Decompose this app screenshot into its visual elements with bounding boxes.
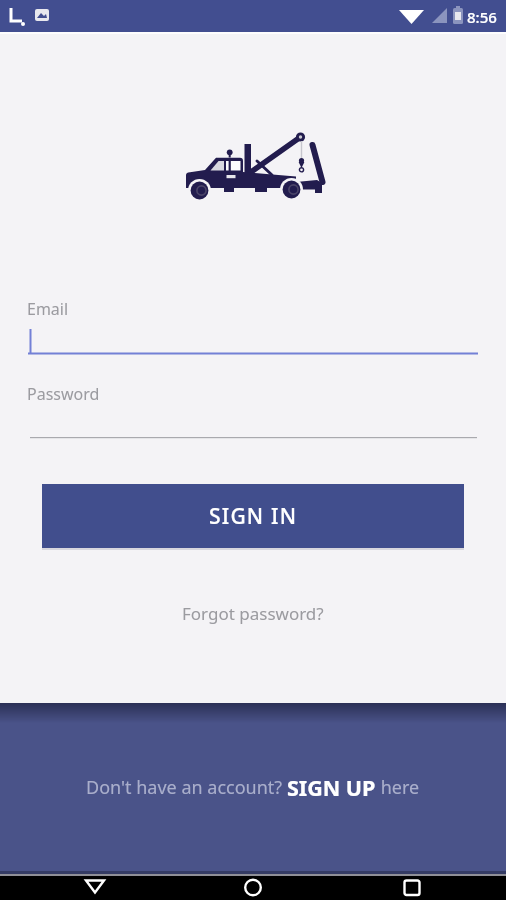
staticText: SIGN UP	[287, 773, 376, 802]
staticText: 8:56	[467, 7, 497, 27]
staticText: Forgot password?	[182, 602, 324, 625]
staticText: SIGN IN	[209, 502, 298, 531]
staticText: here	[376, 775, 420, 800]
staticText: Password	[27, 383, 100, 405]
button[interactable]: Forgot password?	[172, 598, 334, 629]
staticText: Don't have an account?	[86, 775, 287, 800]
staticText: Email	[27, 298, 69, 320]
button[interactable]: Don't have an account?	[86, 773, 420, 802]
button[interactable]	[228, 876, 278, 900]
button[interactable]: SIGN IN	[42, 484, 464, 548]
button[interactable]	[387, 876, 437, 900]
button[interactable]	[70, 876, 120, 900]
